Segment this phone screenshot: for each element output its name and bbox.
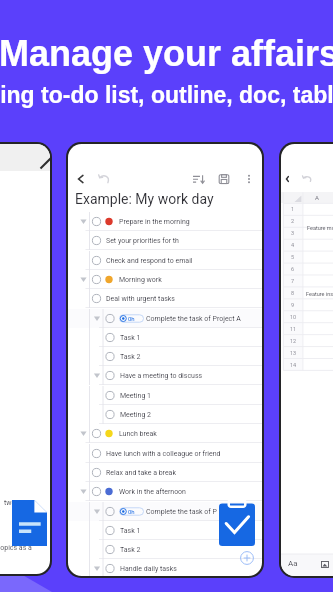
staticText: Have a meeting to discuss: [120, 372, 203, 380]
button[interactable]: Edit: [40, 157, 50, 169]
button[interactable]: Complete the task of P: [68, 502, 262, 521]
staticText: Manage your affairs: [0, 33, 333, 73]
staticText: Feature ins: [306, 291, 333, 297]
staticText: Task 2: [120, 546, 141, 554]
staticText: 12: [290, 338, 297, 344]
button[interactable]: Handle daily tasks: [68, 559, 262, 576]
button[interactable]: Task 1: [68, 328, 262, 347]
button[interactable]: Insert image: [321, 561, 329, 568]
staticText: two: [4, 499, 16, 507]
button[interactable]: Prepare in the morning: [68, 212, 262, 231]
staticText: Task 1: [120, 527, 141, 535]
button[interactable]: Task 2: [68, 347, 262, 366]
button[interactable]: Have lunch with a colleague or friend: [68, 444, 262, 463]
button[interactable]: Sort: [193, 173, 205, 185]
button[interactable]: Morning work: [68, 270, 262, 289]
staticText: 2: [291, 218, 295, 224]
staticText: Have lunch with a colleague or friend: [106, 450, 221, 458]
staticText: 11: [290, 326, 297, 332]
staticText: 14: [290, 362, 297, 368]
staticText: Example: My work day: [75, 191, 214, 207]
staticText: 0h: [128, 315, 135, 322]
staticText: Check and respond to email: [106, 257, 193, 265]
button[interactable]: Meeting 2: [68, 405, 262, 424]
staticText: 8: [291, 290, 295, 296]
staticText: Task 2: [120, 353, 141, 361]
staticText: Task 1: [120, 334, 141, 342]
button[interactable]: Task 1: [68, 521, 262, 540]
staticText: 13: [290, 350, 297, 356]
staticText: 1: [291, 206, 295, 212]
staticText: 6: [291, 266, 295, 272]
staticText: 3: [291, 230, 295, 236]
button[interactable]: Deal with urgent tasks: [68, 289, 262, 308]
staticText: Work in the afternoon: [119, 488, 186, 496]
button[interactable]: Lunch break: [68, 424, 262, 443]
button[interactable]: Task 2: [68, 540, 262, 559]
button[interactable]: Text format: [288, 560, 299, 569]
staticText: 9: [291, 302, 295, 308]
button[interactable]: Relax and take a break: [68, 463, 262, 482]
button[interactable]: Back: [75, 173, 87, 185]
staticText: Deal with urgent tasks: [106, 295, 175, 303]
staticText: 4: [291, 242, 295, 248]
button[interactable]: Work in the afternoon: [68, 482, 262, 501]
staticText: Meeting 1: [120, 392, 151, 400]
staticText: Prepare in the morning: [119, 218, 190, 226]
staticText: A: [315, 194, 319, 201]
staticText: 7: [291, 278, 295, 284]
staticText: Set your priorities for th: [106, 237, 179, 245]
staticText: Meeting 2: [120, 411, 151, 419]
button[interactable]: More options: [243, 173, 255, 185]
staticText: Supporting to-do list, outline, doc, tab…: [0, 82, 333, 108]
staticText: Complete the task of Project A: [146, 315, 241, 323]
staticText: 0h: [128, 508, 135, 515]
staticText: 10: [290, 314, 297, 320]
staticText: Handle daily tasks: [120, 565, 177, 573]
button[interactable]: Meeting 1: [68, 386, 262, 405]
staticText: 5: [291, 254, 295, 260]
button[interactable]: Check and respond to email: [68, 251, 262, 270]
staticText: Lunch break: [119, 430, 157, 438]
staticText: Morning work: [119, 276, 162, 284]
button[interactable]: Undo: [302, 174, 313, 183]
button[interactable]: Complete the task of Project A: [68, 309, 262, 328]
button[interactable]: Undo: [98, 172, 111, 185]
button[interactable]: Have a meeting to discuss: [68, 366, 262, 385]
staticText: Relax and take a break: [106, 469, 176, 477]
button[interactable]: Back: [285, 175, 290, 183]
button[interactable]: Add task: [240, 551, 254, 565]
button[interactable]: Set your priorities for th: [68, 231, 262, 250]
staticText: topics as a: [0, 544, 32, 552]
staticText: Complete the task of P: [146, 508, 217, 516]
button[interactable]: Save: [218, 173, 230, 185]
staticText: Feature mo: [307, 225, 333, 231]
staticText: Aa: [288, 559, 298, 568]
